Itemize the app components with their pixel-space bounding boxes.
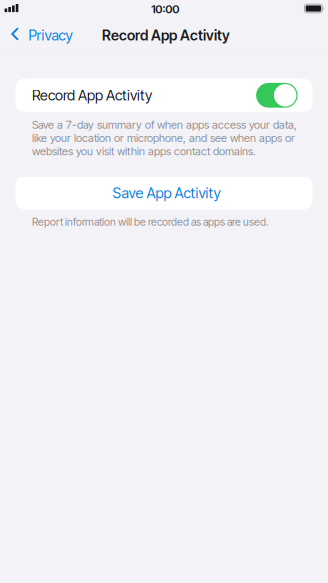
button[interactable]: Save App Activity — [15, 177, 312, 209]
button[interactable]: Record App Activity — [15, 79, 312, 112]
staticText: Save App Activity — [112, 184, 220, 202]
staticText: Record App Activity — [102, 27, 230, 44]
staticText: Report information will be recorded as a… — [32, 215, 269, 228]
staticText: Save a 7-day summary of when apps access… — [32, 118, 297, 158]
button[interactable]: Privacy — [0, 19, 81, 51]
staticText: Record App Activity — [32, 87, 152, 104]
staticText: Privacy — [28, 26, 72, 44]
staticText: 10:00 — [151, 2, 179, 16]
